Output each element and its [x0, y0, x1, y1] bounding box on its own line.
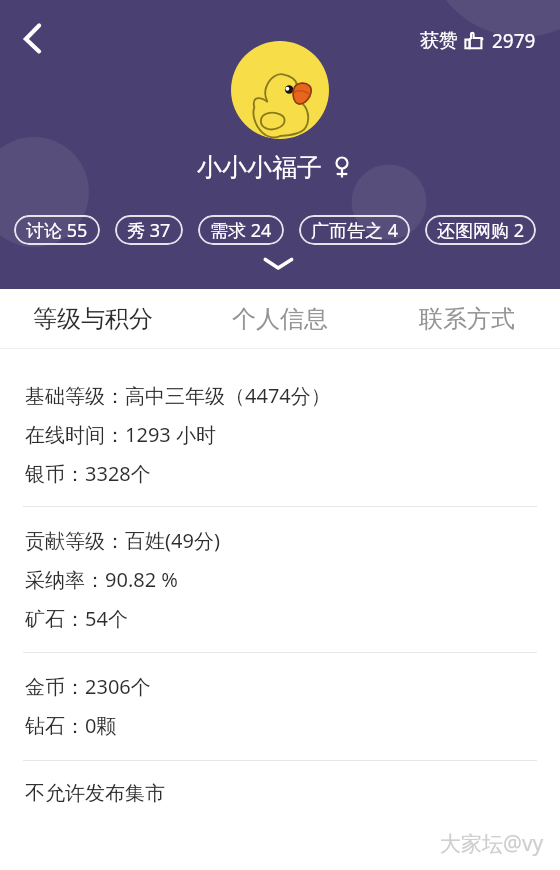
staticText: 大家坛@vy	[440, 829, 544, 858]
button[interactable]: 个人信息	[186, 289, 373, 348]
staticText: 贡献等级：百姓(49分)	[25, 527, 220, 554]
staticText: 获赞	[420, 29, 458, 53]
staticText: 等级与积分	[33, 304, 153, 334]
staticText: 联系方式	[419, 304, 515, 334]
staticText: 金币：2306个	[25, 673, 151, 700]
staticText: 采纳率：90.82 %	[25, 566, 178, 593]
staticText: 矿石：54个	[25, 605, 128, 632]
staticText: 广而告之 4	[311, 218, 398, 243]
staticText: 2979	[492, 28, 536, 54]
button[interactable]: 秀 37	[115, 215, 183, 245]
button[interactable]: 等级与积分	[0, 289, 186, 348]
staticText: 秀 37	[127, 218, 171, 243]
button[interactable]: 需求 24	[198, 215, 284, 245]
button[interactable]: Back	[8, 14, 56, 62]
staticText: 银币：3328个	[25, 460, 151, 487]
button[interactable]: 还图网购 2	[425, 215, 536, 245]
staticText: 需求 24	[210, 218, 272, 243]
button[interactable]: Avatar	[231, 41, 329, 139]
staticText: 个人信息	[232, 304, 328, 334]
button[interactable]: 广而告之 4	[299, 215, 410, 245]
staticText: 钻石：0颗	[25, 712, 117, 739]
staticText: 小小小福子	[197, 152, 322, 183]
staticText: 还图网购 2	[437, 218, 524, 243]
staticText: 在线时间：1293 小时	[25, 421, 216, 448]
staticText: 基础等级：高中三年级（4474分）	[25, 382, 331, 409]
staticText: 讨论 55	[26, 218, 88, 243]
button[interactable]: 联系方式	[373, 289, 560, 348]
staticText: 不允许发布集市	[25, 781, 165, 806]
button[interactable]: 获赞	[420, 28, 536, 54]
button[interactable]: 讨论 55	[14, 215, 100, 245]
button[interactable]: Expand	[258, 250, 300, 278]
